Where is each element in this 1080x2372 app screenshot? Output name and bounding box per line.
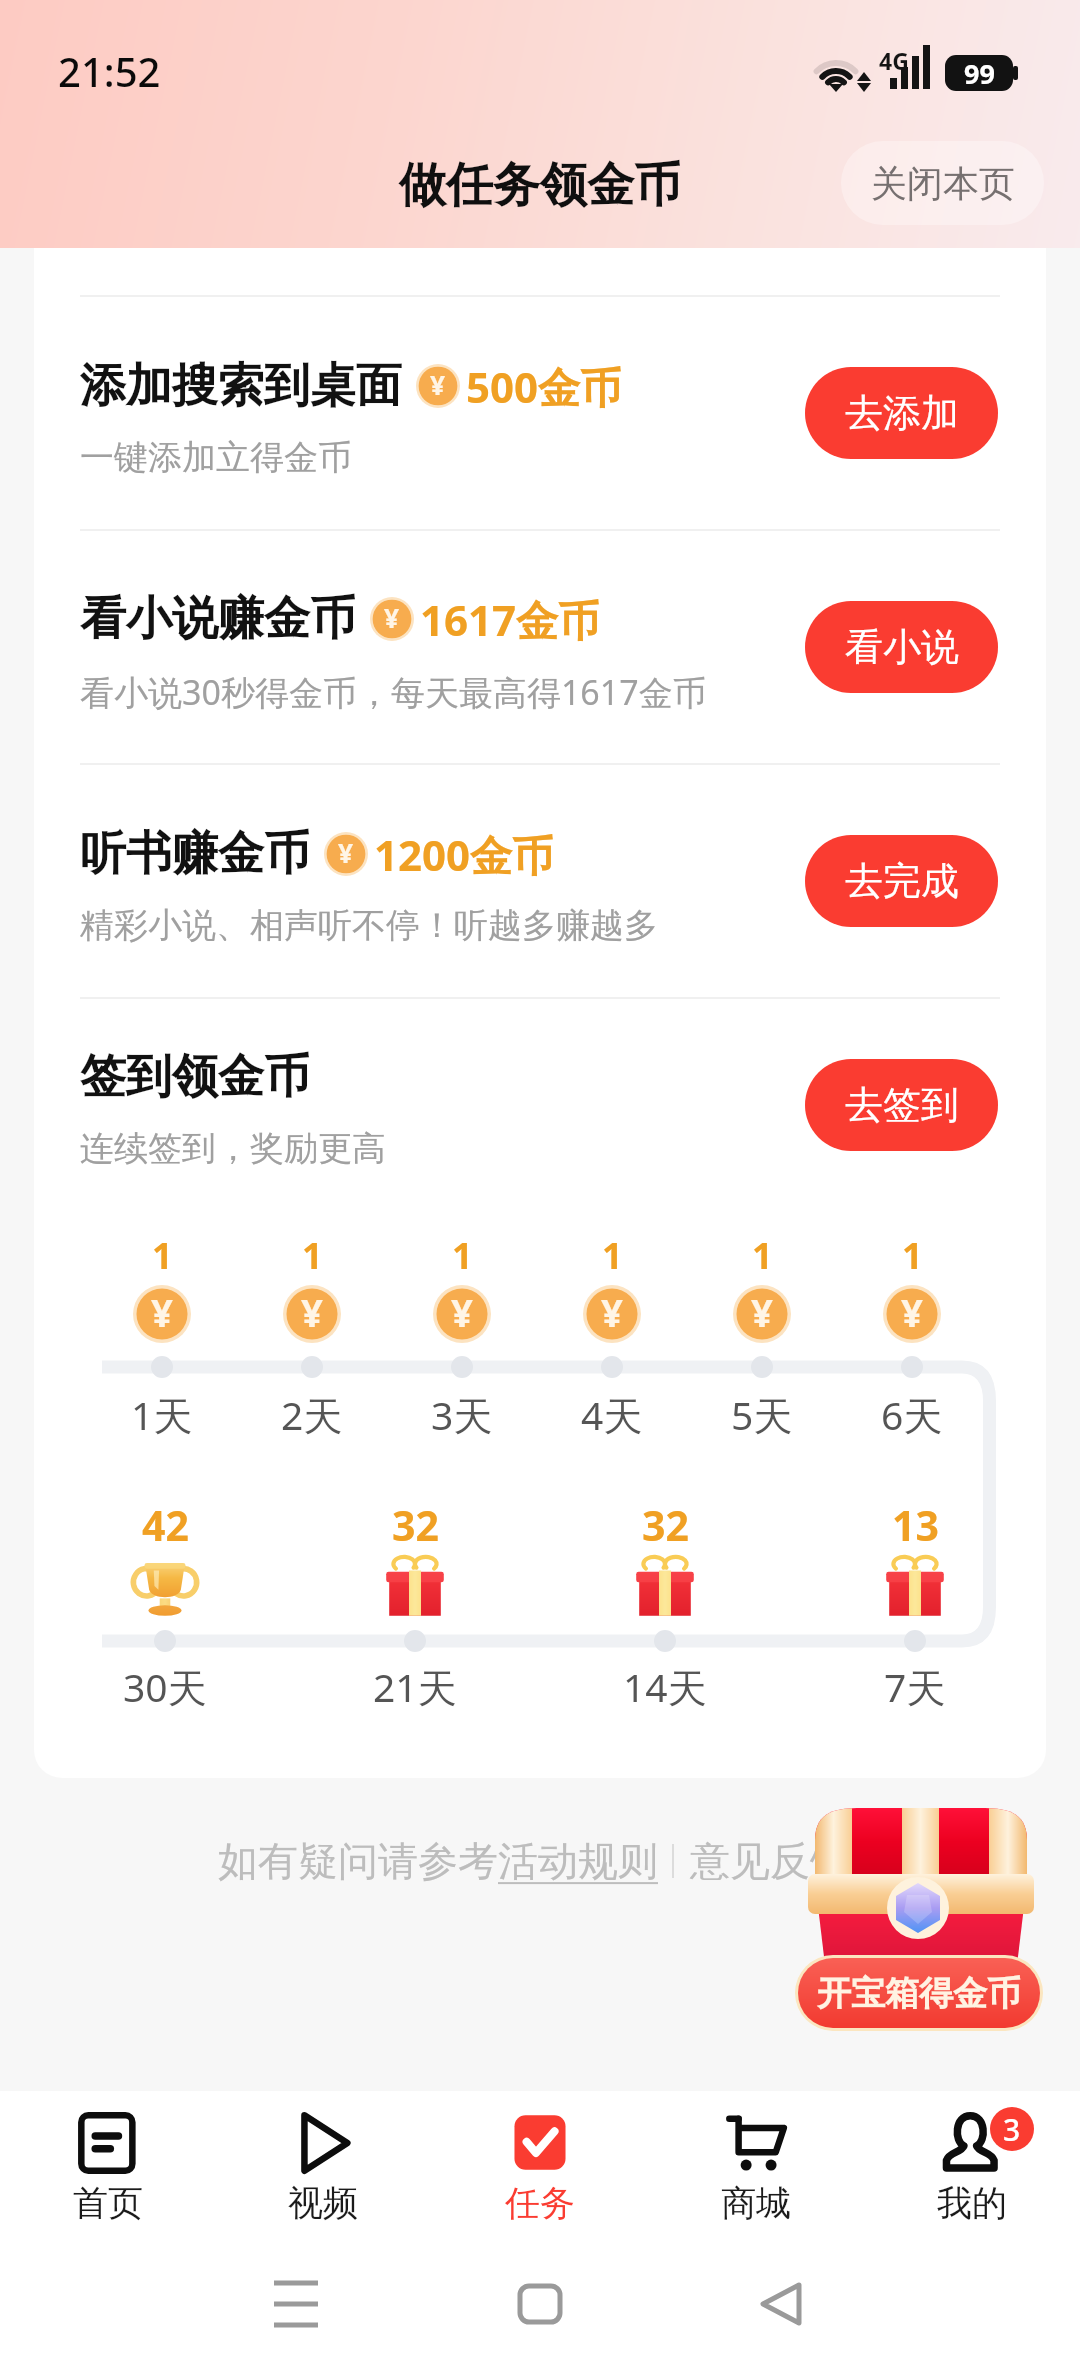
staticText: 视频 [288, 2181, 358, 2225]
staticText: 2天 [281, 1388, 343, 1441]
staticText: 去添加 [845, 389, 959, 437]
button[interactable]: 关闭本页 [841, 141, 1044, 225]
staticText: ¥ [384, 600, 400, 636]
staticText: 1200金币 [374, 826, 555, 883]
button[interactable]: 首页 [0, 2097, 216, 2242]
staticText: 1617金币 [420, 591, 601, 648]
button[interactable]: 去签到 [805, 1059, 998, 1151]
staticText: 1天 [131, 1388, 193, 1441]
button[interactable]: 意见反馈 [690, 1836, 850, 1886]
staticText: 14天 [623, 1660, 707, 1713]
staticText: ¥ [601, 1286, 623, 1338]
staticText: 我的 [937, 2181, 1007, 2225]
button[interactable]: 视频 [215, 2097, 431, 2242]
staticText: 13 [892, 1497, 939, 1553]
staticText: 3 [1003, 2109, 1021, 2150]
staticText: 1 [902, 1231, 923, 1280]
staticText: 如有疑问请参考 [218, 1836, 498, 1886]
staticText: ¥ [751, 1286, 773, 1338]
staticText: 任务 [505, 2181, 575, 2225]
staticText: ¥ [151, 1286, 173, 1338]
staticText: 500金币 [466, 358, 623, 415]
staticText: ¥ [451, 1286, 473, 1338]
staticText: 看小说赚金币 [80, 590, 356, 648]
staticText: 连续签到，奖励更高 [80, 1127, 386, 1170]
staticText: 5天 [731, 1388, 793, 1441]
staticText: 42 [142, 1497, 189, 1553]
button[interactable]: Recent apps [256, 2264, 336, 2344]
staticText: 一键添加立得金币 [80, 436, 352, 479]
staticText: 1 [452, 1231, 473, 1280]
staticText: ¥ [901, 1286, 923, 1338]
staticText: 1 [302, 1231, 323, 1280]
staticText: 听书赚金币 [80, 825, 310, 883]
staticText: 1 [602, 1231, 623, 1280]
staticText: 开宝箱得金币 [817, 1972, 1021, 2015]
button[interactable]: 任务 [432, 2097, 648, 2242]
staticText: 首页 [73, 2181, 143, 2225]
staticText: ¥ [430, 367, 446, 403]
button[interactable]: 3 [864, 2097, 1080, 2242]
staticText: 6天 [881, 1388, 943, 1441]
staticText: 4G [879, 45, 909, 76]
button[interactable]: 看小说 [805, 601, 998, 693]
button[interactable]: Home [500, 2264, 580, 2344]
button[interactable]: 去完成 [805, 835, 998, 927]
staticText: 21:52 [58, 44, 161, 98]
staticText: 32 [392, 1497, 439, 1553]
button[interactable]: 去添加 [805, 367, 998, 459]
staticText: 关闭本页 [871, 161, 1015, 206]
staticText: 看小说30秒得金币，每天最高得1617金币 [80, 669, 707, 715]
button[interactable]: Back [740, 2264, 820, 2344]
button[interactable]: 开宝箱得金币 [790, 1800, 1050, 2040]
staticText: ¥ [301, 1286, 323, 1338]
staticText: 30天 [123, 1660, 207, 1713]
staticText: 添加搜索到桌面 [80, 357, 402, 415]
staticText: 商城 [721, 2181, 791, 2225]
staticText: 1 [752, 1231, 773, 1280]
staticText: 精彩小说、相声听不停！听越多赚越多 [80, 904, 658, 947]
staticText: 做任务领金币 [399, 156, 681, 215]
button[interactable]: 商城 [648, 2097, 864, 2242]
staticText: 去签到 [845, 1081, 959, 1129]
staticText: 21天 [373, 1660, 457, 1713]
staticText: 7天 [884, 1660, 946, 1713]
staticText: 1 [152, 1231, 173, 1280]
staticText: 去完成 [845, 857, 959, 905]
staticText: 4天 [581, 1388, 643, 1441]
staticText: 99 [964, 55, 995, 91]
staticText: 看小说 [845, 623, 959, 671]
staticText: ¥ [338, 835, 354, 871]
staticText: 3天 [431, 1388, 493, 1441]
staticText: 签到领金币 [80, 1048, 310, 1106]
staticText: 32 [642, 1497, 689, 1553]
button[interactable]: 活动规则 [498, 1836, 658, 1886]
